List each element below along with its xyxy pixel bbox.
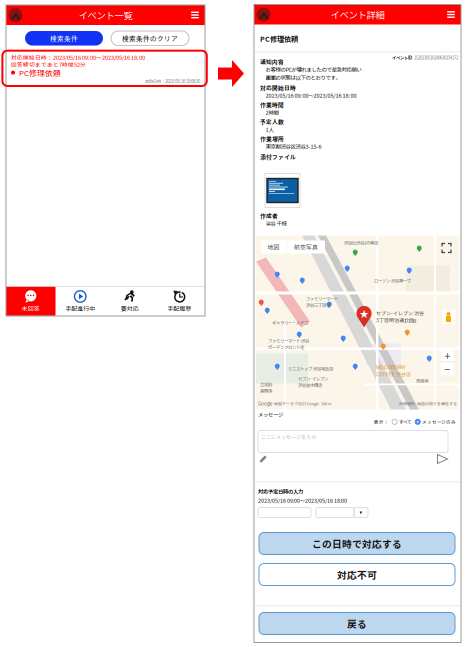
staticText: 航空写真 <box>294 243 318 251</box>
staticText: 渋谷区渋谷2の南店 <box>344 239 378 246</box>
button[interactable]: 対応開始日時：2023/05/16 09:00〜2023/05/16 18:00 <box>6 52 204 89</box>
staticText: 画面の状態は以下のとおりです。 <box>265 73 340 81</box>
staticText: 深谷 千枝 <box>265 219 286 227</box>
staticText: 100 m <box>321 401 332 406</box>
button[interactable]: Attach file <box>258 454 268 464</box>
staticText: 予定人数 <box>260 117 284 126</box>
button[interactable]: 航空写真 <box>287 240 325 253</box>
staticText: 2時間 <box>265 108 278 116</box>
staticText: メッセージ <box>258 410 283 418</box>
button[interactable]: Send <box>437 454 448 464</box>
staticText: 戻る <box>347 616 367 631</box>
staticText: Google <box>258 400 272 407</box>
button[interactable]: この日時で対応する <box>259 532 455 554</box>
button[interactable]: Zoom in <box>441 348 454 361</box>
button[interactable]: 検索条件 <box>25 31 103 45</box>
staticText: 対応予定日時の入力 <box>258 487 303 495</box>
button[interactable]: 対応不可 <box>259 563 455 585</box>
staticText: 添付ファイル <box>260 152 296 161</box>
button[interactable]: 手配履歴 <box>154 287 204 316</box>
staticText: ローソン 渋谷東一丁 <box>374 277 411 284</box>
staticText: イベント一覧 <box>78 8 132 22</box>
staticText: ミニストップ 渋谷桜丘店 <box>288 365 333 372</box>
staticText: 検索条件のクリア <box>122 33 178 43</box>
staticText: すべて <box>399 418 412 425</box>
button[interactable]: すべて <box>392 418 412 425</box>
staticText: 表示： <box>374 418 389 425</box>
staticText: イベントID <box>392 54 412 61</box>
staticText: 1人 <box>265 125 273 133</box>
staticText: ファミリーマート 渋谷 ガーデンフロント店 <box>268 337 309 350</box>
staticText: 作成者 <box>260 211 278 220</box>
staticText: 2023/05/16 09:00〜2023/05/16 18:00 <box>258 496 347 504</box>
staticText: 対応不可 <box>337 567 377 582</box>
staticText: 検索条件 <box>50 33 78 43</box>
staticText: 地図 <box>267 243 279 251</box>
button[interactable]: 手配進行中 <box>55 287 105 316</box>
staticText: 回答締切まであと7時間52分 <box>11 60 86 68</box>
staticText: 2023/05/16 09:00〜2023/05/16 18:00 <box>265 91 356 99</box>
button[interactable]: 要対応 <box>105 287 154 316</box>
staticText: 1丁目 <box>404 317 417 324</box>
staticText: 対応開始日時 <box>260 83 296 92</box>
button[interactable]: Menu <box>445 7 457 21</box>
staticText: WOODBERRY COFFEE 渋谷店 <box>376 363 411 378</box>
staticText: PC修理依頼 <box>19 67 61 78</box>
staticText: 作業時間 <box>260 100 284 109</box>
staticText: 登録日時：2023/05/16 10:06:30 <box>145 78 200 84</box>
button[interactable]: メッセージのみ <box>415 418 456 425</box>
staticText: セブン-イレブン 渋谷 3丁目明治通り店 <box>376 309 424 324</box>
staticText: 地図の誤りを報告する <box>417 401 457 406</box>
staticText: メッセージのみ <box>422 418 456 425</box>
staticText: − <box>444 361 450 376</box>
staticText: この日時で対応する <box>312 536 402 551</box>
staticText: 改良湯 <box>416 377 428 384</box>
staticText: + <box>444 347 450 363</box>
button[interactable]: Zoom out <box>441 362 454 375</box>
staticText: ファミリーマート 渋谷三丁目店 <box>306 295 338 308</box>
button[interactable]: Fullscreen <box>442 243 452 253</box>
staticText: ギャラリー・ルデコ <box>272 319 308 326</box>
staticText: 未回答 <box>22 304 40 313</box>
staticText: 要対応 <box>121 304 139 313</box>
button[interactable]: 戻る <box>259 612 455 634</box>
button[interactable]: Menu <box>189 8 201 22</box>
staticText: 東京都渋谷区渋谷3-15-6 <box>265 142 321 150</box>
staticText: 立宗妙 東祭寺 <box>260 381 272 394</box>
button[interactable]: Select <box>354 507 368 517</box>
staticText: PC修理依頼 <box>260 33 298 44</box>
staticText: 手配進行中 <box>65 304 95 313</box>
staticText: 作業場所 <box>260 134 284 143</box>
staticText: ▾ <box>359 509 362 516</box>
button[interactable]: 検索条件のクリア <box>111 31 189 45</box>
staticText: お客様のPCが壊れましたので至急対応願います。 <box>265 65 361 81</box>
staticText: セブン-イレブン 渋谷並木橋店 <box>298 375 328 388</box>
staticText: イベント詳細 <box>330 8 384 21</box>
staticText: ここにメッセージを入力 <box>261 433 316 440</box>
staticText: 手配履歴 <box>167 304 191 313</box>
staticText: 利用規約 <box>399 401 415 406</box>
staticText: 地図データ ©2023 Google <box>274 401 319 406</box>
button[interactable]: 地図 <box>261 240 286 253</box>
staticText: ★ <box>359 307 368 320</box>
staticText: 対応開始日時：2023/05/16 09:00〜2023/05/16 18:00 <box>11 53 145 61</box>
staticText: 1520230516100630154172 <box>414 54 458 61</box>
staticText: 通知内容 <box>260 57 284 66</box>
button[interactable]: 未回答 <box>6 287 55 316</box>
